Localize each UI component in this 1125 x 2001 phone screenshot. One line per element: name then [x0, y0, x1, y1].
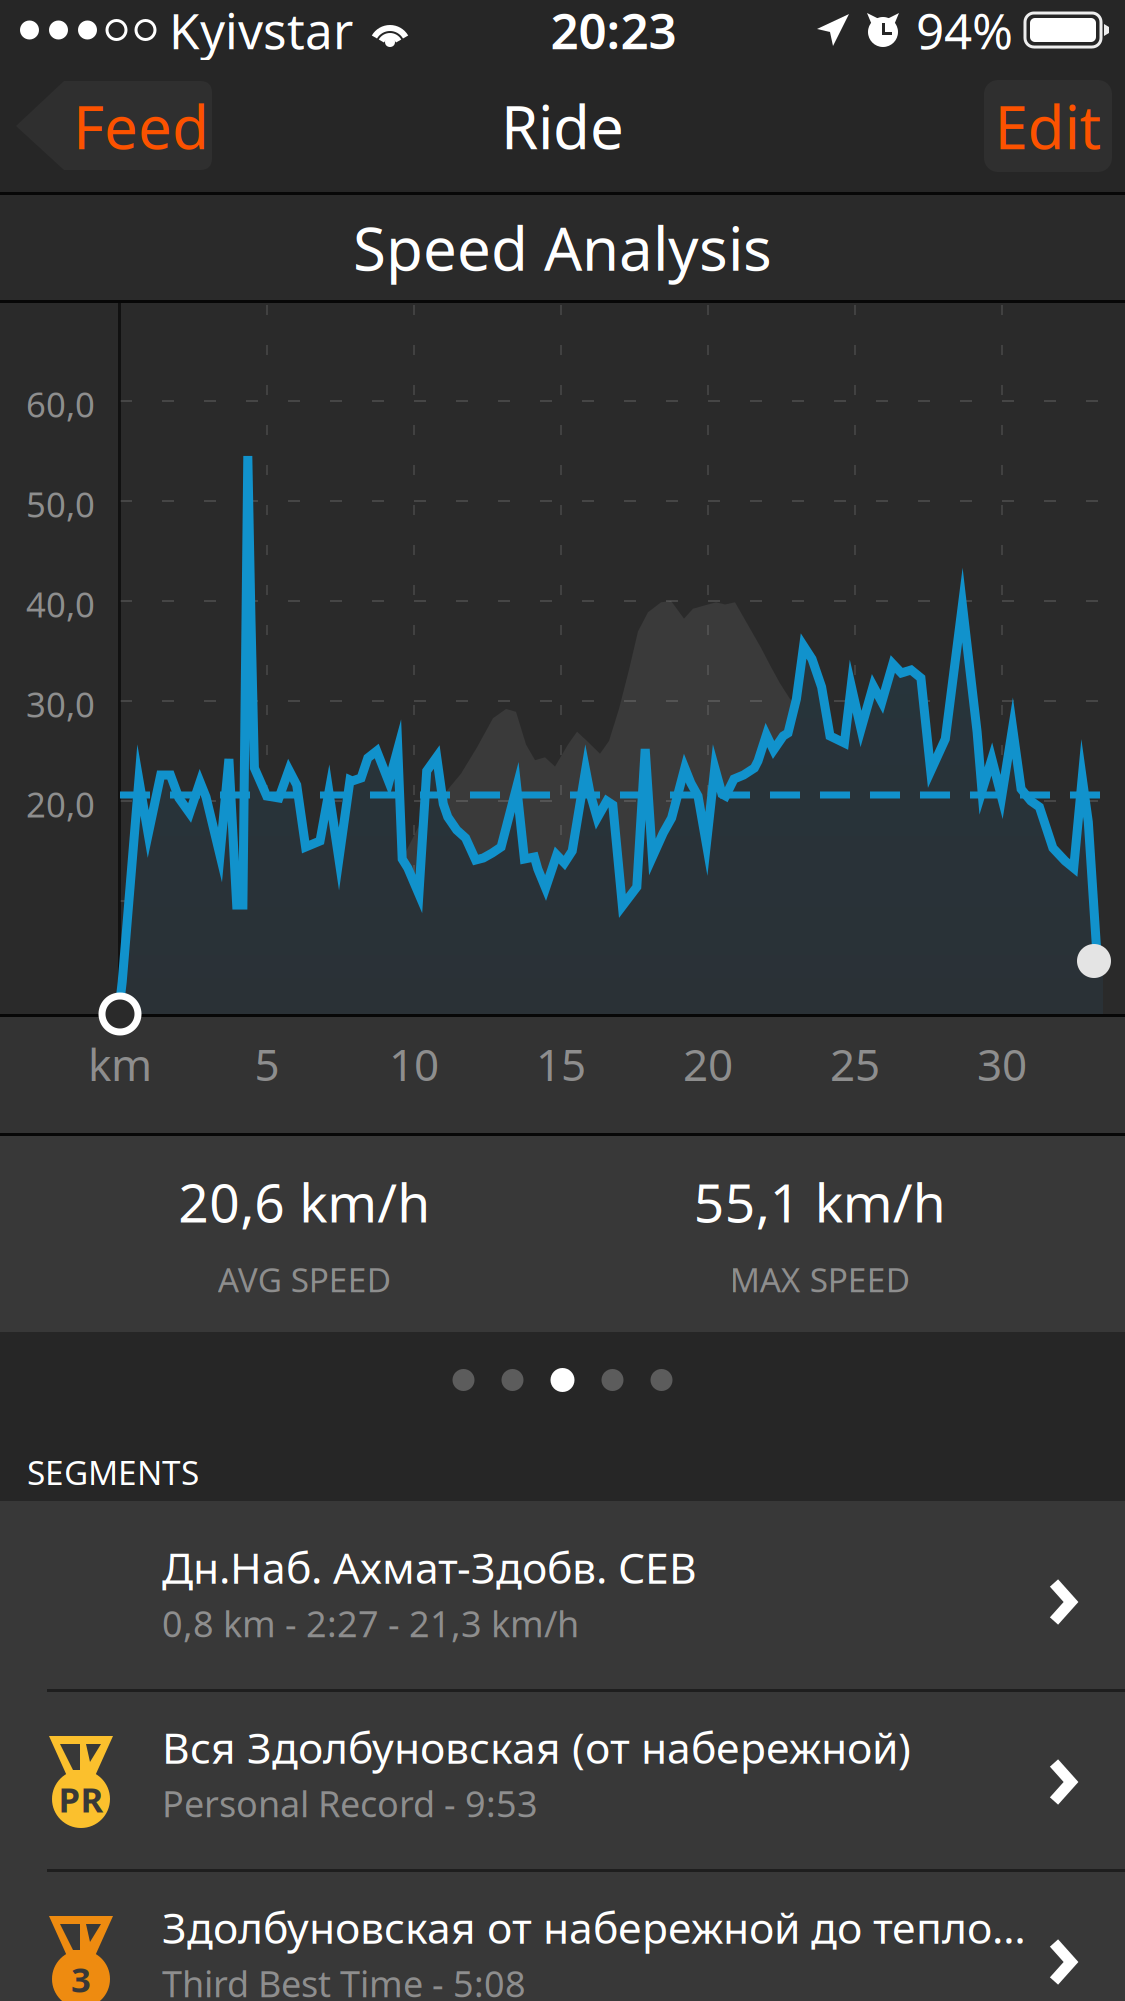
staticText: 50,0 — [26, 481, 95, 527]
button[interactable]: PR — [0, 1692, 1125, 1872]
staticText: 25 — [830, 1035, 880, 1093]
staticText: km — [88, 1035, 152, 1093]
staticText: Ride — [501, 86, 624, 166]
staticText: 0,8 km - 2:27 - 21,3 km/h — [162, 1599, 579, 1647]
staticText: 10 — [389, 1035, 439, 1093]
staticText: 3 — [71, 1956, 91, 2001]
staticText: AVG SPEED — [218, 1257, 391, 1302]
staticText: Speed Analysis — [353, 208, 772, 287]
staticText: Дн.Наб. Ахмат-Здобв. СЕВ — [162, 1539, 697, 1595]
staticText: 5 — [254, 1035, 279, 1093]
staticText: 30,0 — [26, 681, 95, 727]
staticText: 15 — [536, 1035, 586, 1093]
staticText: 40,0 — [26, 581, 95, 627]
staticText: 20 — [683, 1035, 733, 1093]
staticText: 20,6 km/h — [178, 1166, 430, 1237]
staticText: Third Best Time - 5:08 — [162, 1959, 526, 2001]
staticText: 20,0 — [26, 781, 95, 827]
staticText: 94% — [916, 0, 1013, 63]
staticText: Edit — [994, 86, 1101, 166]
button[interactable]: Feed — [12, 80, 216, 172]
staticText: 30 — [977, 1035, 1027, 1093]
staticText: Вся Здолбуновская (от набережной) — [162, 1719, 911, 1775]
staticText: MAX SPEED — [730, 1257, 910, 1302]
button[interactable]: Дн.Наб. Ахмат-Здобв. СЕВ — [0, 1512, 1125, 1692]
staticText: PR — [58, 1776, 103, 1822]
staticText: Feed — [73, 86, 209, 166]
staticText: 60,0 — [26, 381, 95, 427]
staticText: 55,1 km/h — [694, 1166, 946, 1237]
staticText: Kyivstar — [169, 0, 353, 63]
staticText: Personal Record - 9:53 — [162, 1779, 538, 1827]
button[interactable]: 3 — [0, 1872, 1125, 2001]
button[interactable]: Edit — [984, 80, 1112, 172]
staticText: 20:23 — [550, 0, 676, 63]
staticText: SEGMENTS — [27, 1450, 199, 1494]
staticText: Здолбуновская от набережной до тепло… — [162, 1899, 1026, 1955]
